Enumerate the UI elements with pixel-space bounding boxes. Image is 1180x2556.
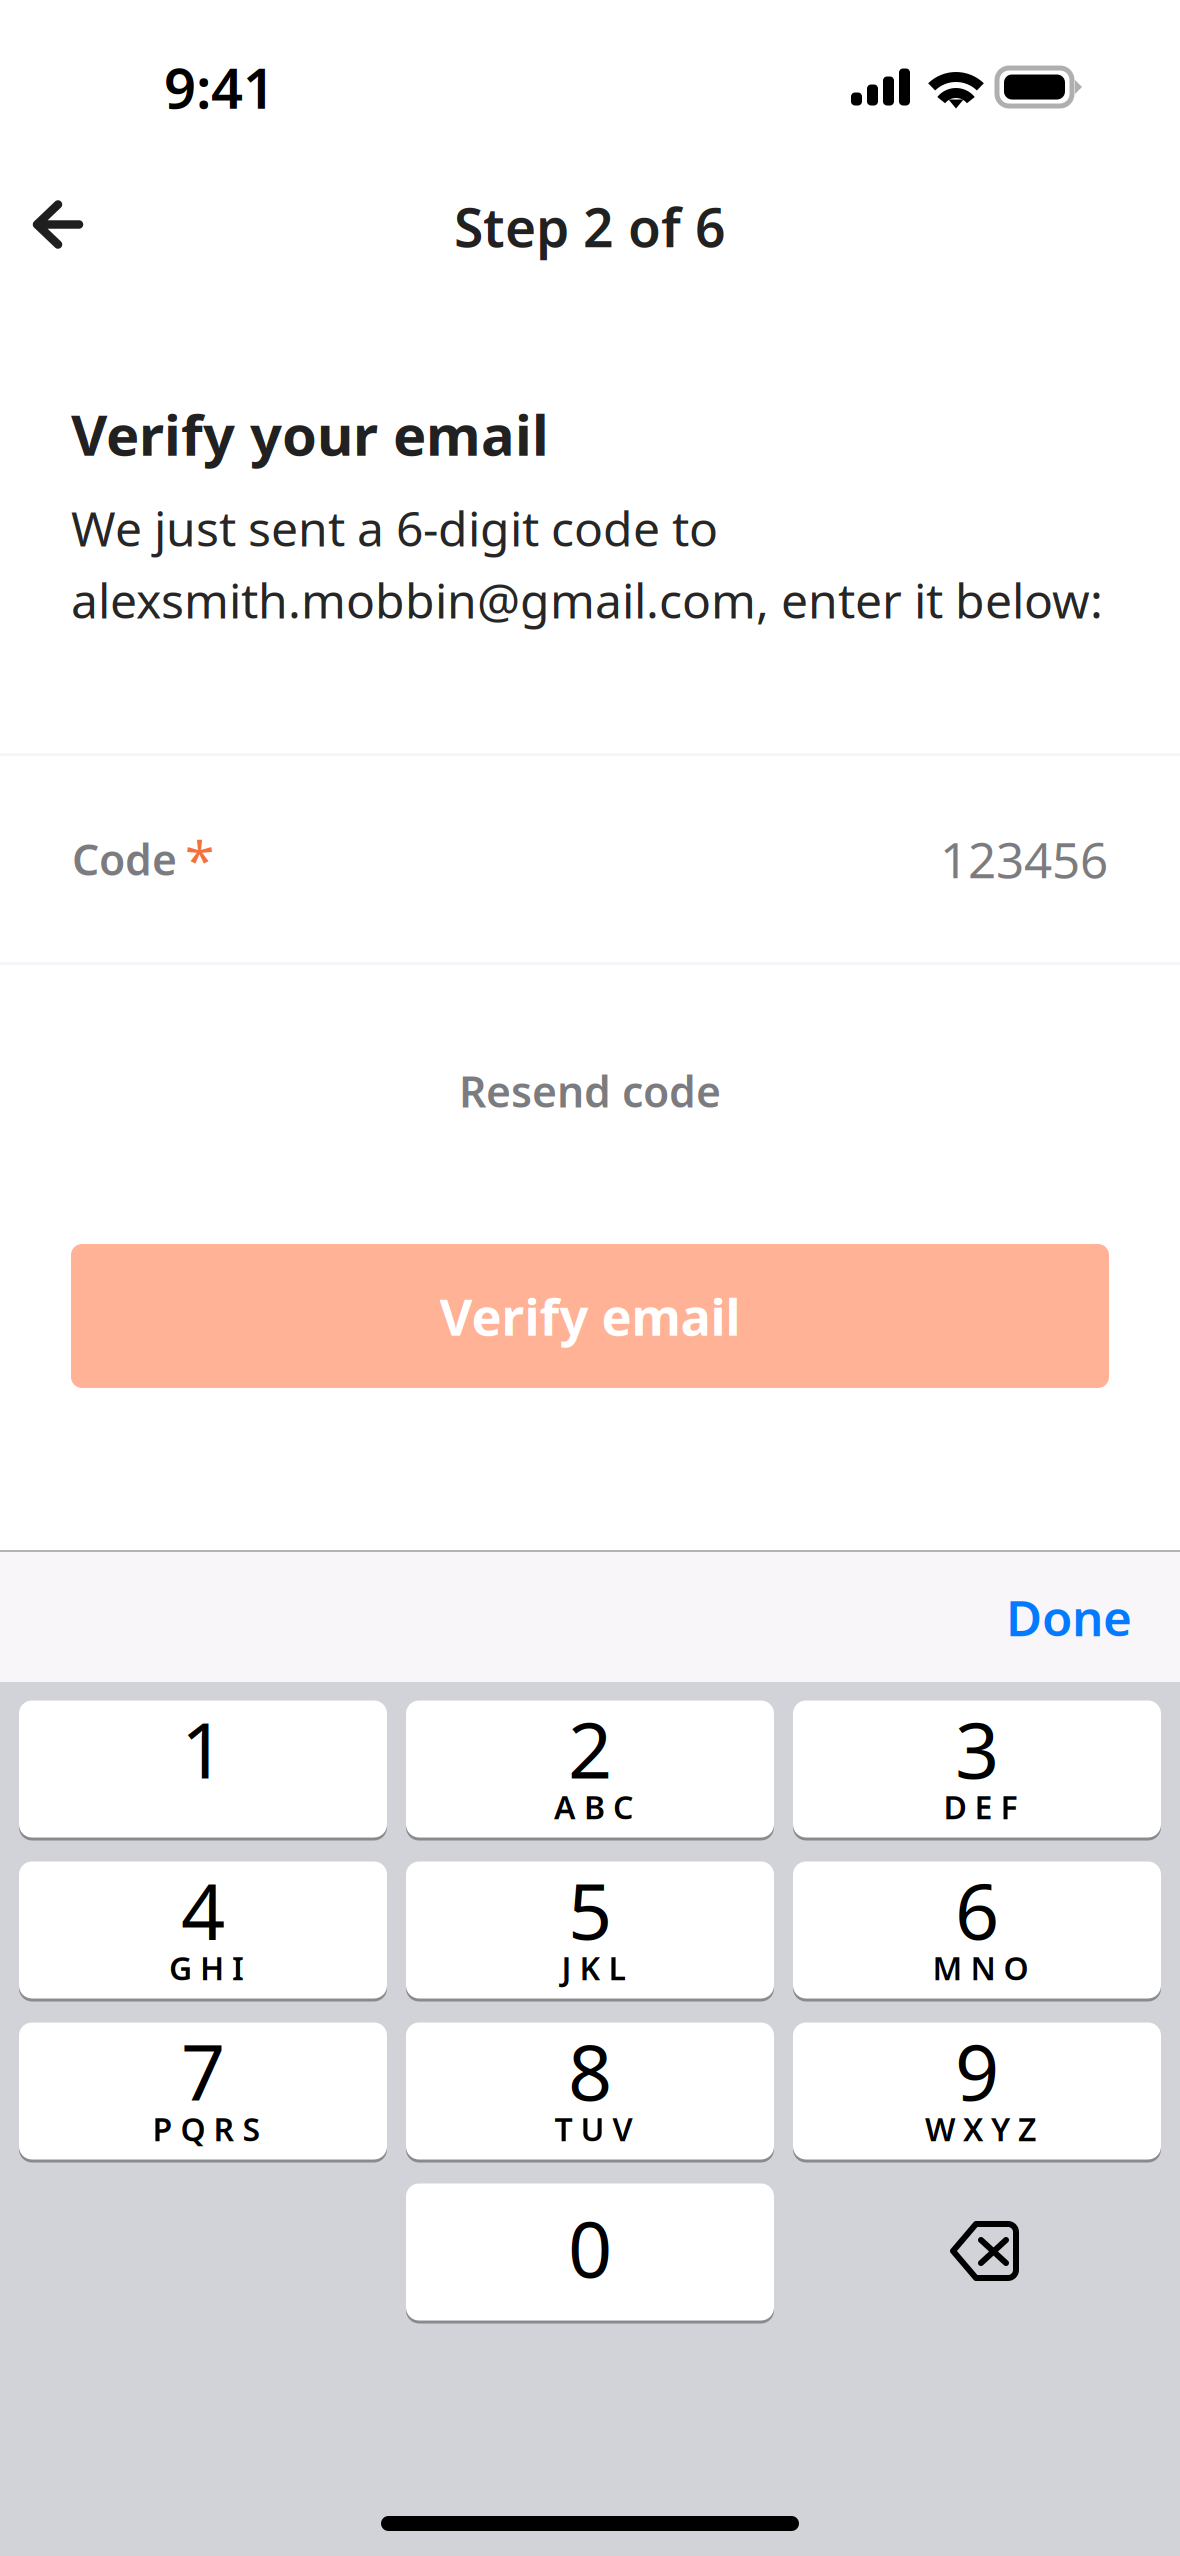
staticText: 9:41 bbox=[164, 50, 275, 124]
staticText: DEF bbox=[943, 1785, 1017, 1828]
staticText: We just sent a 6-digit code to bbox=[71, 496, 718, 560]
staticText: JKL bbox=[561, 1946, 625, 1989]
button[interactable]: 6 bbox=[793, 1860, 1161, 2000]
button[interactable]: 0 bbox=[406, 2182, 774, 2322]
staticText: Done bbox=[1006, 1584, 1132, 1650]
staticText: WXYZ bbox=[925, 2107, 1036, 2150]
staticText: Code bbox=[72, 831, 177, 887]
button[interactable]: 4 bbox=[19, 1860, 387, 2000]
staticText: alexsmith.mobbin@gmail.com, enter it bel… bbox=[71, 568, 1103, 632]
staticText: ABC bbox=[554, 1785, 633, 1828]
button[interactable]: Back bbox=[0, 163, 118, 271]
staticText: 0 bbox=[568, 2196, 612, 2299]
staticText: TUV bbox=[554, 2107, 632, 2150]
staticText: 5 bbox=[568, 1858, 612, 1961]
staticText: Resend code bbox=[459, 1063, 721, 1119]
staticText: 7 bbox=[181, 2019, 225, 2122]
staticText: MNO bbox=[932, 1946, 1028, 1989]
staticText: GHI bbox=[169, 1946, 244, 1989]
staticText: 2 bbox=[568, 1697, 612, 1800]
staticText: * bbox=[185, 824, 214, 894]
staticText: Verify email bbox=[439, 1282, 740, 1350]
staticText: 6 bbox=[955, 1858, 999, 1961]
staticText: 3 bbox=[955, 1697, 999, 1800]
button[interactable]: 8 bbox=[406, 2021, 774, 2161]
button[interactable]: 7 bbox=[19, 2021, 387, 2161]
staticText: 8 bbox=[568, 2019, 612, 2122]
button[interactable]: Done bbox=[0, 1552, 1180, 1682]
staticText: 9 bbox=[955, 2019, 999, 2122]
staticText: Step 2 of 6 bbox=[454, 191, 726, 262]
button[interactable]: Delete bbox=[793, 2182, 1161, 2322]
button[interactable]: 5 bbox=[406, 1860, 774, 2000]
button[interactable]: Verify email bbox=[71, 1244, 1109, 1388]
staticText: 1 bbox=[181, 1697, 225, 1800]
button[interactable]: 1 bbox=[19, 1699, 387, 1839]
staticText: Verify your email bbox=[71, 397, 549, 471]
staticText: PQRS bbox=[152, 2107, 260, 2150]
button[interactable]: 3 bbox=[793, 1699, 1161, 1839]
staticText: 4 bbox=[181, 1858, 225, 1961]
button[interactable]: Resend code bbox=[0, 1060, 1180, 1122]
button[interactable]: 2 bbox=[406, 1699, 774, 1839]
staticText: 123456 bbox=[940, 826, 1108, 892]
button[interactable]: 9 bbox=[793, 2021, 1161, 2161]
